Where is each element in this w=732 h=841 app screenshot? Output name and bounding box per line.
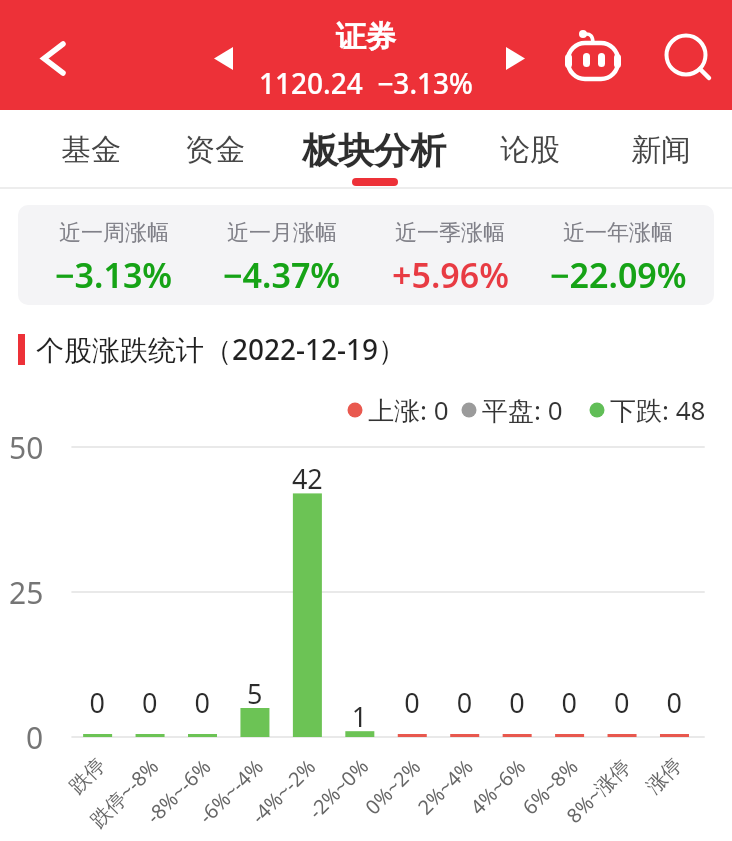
staticText: +5.96%	[392, 252, 509, 298]
button[interactable]	[205, 40, 241, 76]
staticText: 基金	[61, 131, 121, 169]
staticText: 近一月涨幅	[227, 219, 337, 247]
staticText: 1120.24 −3.13%	[259, 64, 473, 102]
staticText: −22.09%	[550, 252, 687, 298]
staticText: 证券	[336, 18, 396, 56]
staticText: 新闻	[631, 131, 691, 169]
button[interactable]	[497, 40, 533, 76]
button[interactable]	[29, 34, 77, 82]
staticText: 资金	[185, 131, 245, 169]
staticText: 论股	[500, 131, 560, 169]
staticText: 近一年涨幅	[563, 219, 673, 247]
button[interactable]	[656, 26, 716, 86]
staticText: −3.13%	[55, 252, 173, 298]
staticText: 个股涨跌统计（2022-12-19）	[36, 330, 407, 368]
button[interactable]: 论股	[440, 124, 620, 176]
staticText: 近一季涨幅	[395, 219, 505, 247]
staticText: −4.37%	[223, 252, 341, 298]
button[interactable]: 资金	[125, 124, 305, 176]
button[interactable]: 新闻	[571, 124, 732, 176]
button[interactable]	[556, 22, 628, 88]
staticText: 板块分析	[302, 128, 446, 173]
button[interactable]: 板块分析	[284, 124, 464, 176]
button[interactable]: 基金	[1, 124, 181, 176]
staticText: 近一周涨幅	[59, 219, 169, 247]
